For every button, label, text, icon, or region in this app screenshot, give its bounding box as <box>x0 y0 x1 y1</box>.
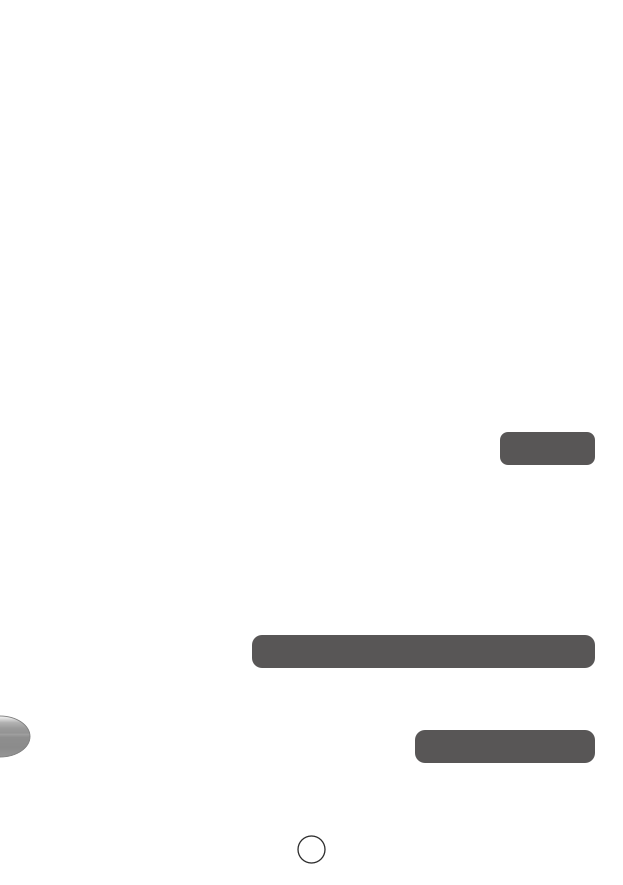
button[interactable]: Message <box>252 635 595 668</box>
button[interactable]: Message <box>500 432 595 465</box>
button[interactable]: Home <box>298 836 325 863</box>
button[interactable]: Message <box>415 730 595 763</box>
button[interactable]: Profile <box>0 716 30 757</box>
